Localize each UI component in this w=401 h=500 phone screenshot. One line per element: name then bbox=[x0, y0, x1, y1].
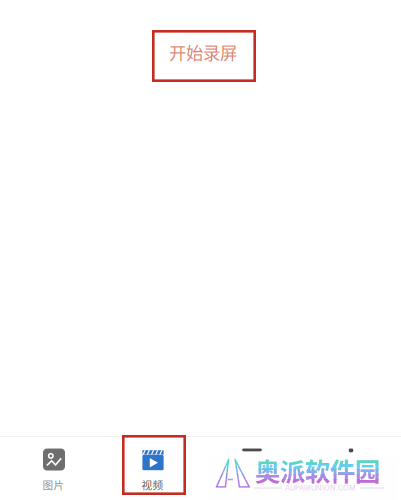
staticText: 视频 bbox=[141, 477, 163, 492]
staticText: 奥派软件园 bbox=[255, 451, 380, 488]
button[interactable]: Tab 4 bbox=[301, 437, 400, 500]
staticText: 图片 bbox=[42, 477, 64, 492]
staticText: 开始录屏 bbox=[169, 39, 237, 65]
button[interactable]: 开始录屏 bbox=[152, 30, 256, 82]
staticText: 奥派软件园 bbox=[255, 451, 380, 488]
staticText: 奥派软件园 bbox=[255, 451, 380, 488]
button[interactable]: 视频 bbox=[103, 437, 202, 500]
staticText: 奥派软件园 bbox=[255, 451, 380, 488]
button[interactable]: Tab 3 bbox=[202, 437, 301, 500]
staticText: AUPAIRUNION.COM bbox=[285, 483, 356, 492]
staticText: 奥派软件园 bbox=[255, 451, 380, 488]
button[interactable]: 图片 bbox=[4, 437, 103, 500]
